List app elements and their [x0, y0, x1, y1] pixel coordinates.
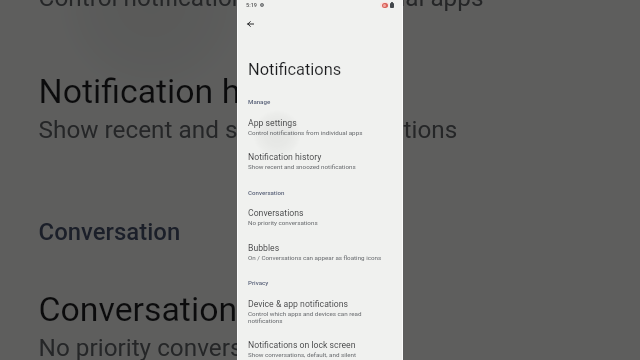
- staticText: Conversation: [39, 216, 182, 243]
- staticText: Show conversations, default, and silent: [248, 351, 357, 358]
- staticText: Control notifications from individual ap…: [39, 0, 486, 10]
- staticText: Control which apps and devices can read …: [248, 310, 391, 324]
- staticText: Notifications: [248, 60, 342, 79]
- staticText: Conversations: [248, 208, 304, 218]
- staticText: Control notifications from individual ap…: [248, 129, 363, 136]
- staticText: Show recent and snoozed notifications: [248, 163, 356, 170]
- staticText: Device & app notifications: [248, 299, 349, 309]
- button[interactable]: Back: [240, 14, 260, 34]
- staticText: App settings: [248, 118, 297, 128]
- staticText: Manage: [248, 98, 271, 105]
- staticText: No priority conversations: [39, 333, 311, 360]
- staticText: Show recent and snoozed notifications: [39, 115, 459, 142]
- button[interactable]: Notification history: [237, 152, 403, 170]
- staticText: Notifications on lock screen: [248, 340, 356, 350]
- button[interactable]: App settings: [237, 118, 403, 136]
- button[interactable]: Conversations: [237, 208, 403, 226]
- button[interactable]: Device & app notifications: [237, 299, 403, 324]
- button[interactable]: Bubbles: [237, 243, 403, 261]
- button[interactable]: Notifications on lock screen: [237, 340, 403, 358]
- staticText: Conversation: [248, 189, 285, 196]
- staticText: Conversations: [39, 290, 256, 329]
- staticText: Notification history: [248, 152, 322, 162]
- staticText: 5:19: [246, 2, 258, 9]
- staticText: Privacy: [248, 279, 269, 286]
- staticText: Notification history: [39, 72, 326, 111]
- staticText: Bubbles: [248, 243, 280, 253]
- staticText: No priority conversations: [248, 219, 318, 226]
- staticText: On / Conversations can appear as floatin…: [248, 254, 382, 261]
